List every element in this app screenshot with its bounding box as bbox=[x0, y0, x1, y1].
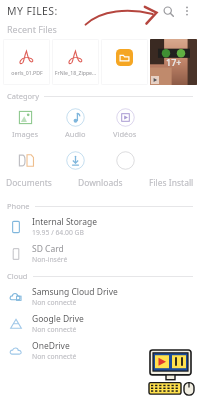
button[interactable]: oerls_01.PDF bbox=[3, 39, 50, 85]
staticText: 19.95 / 64.00 GB bbox=[32, 228, 84, 237]
button[interactable]: Search bbox=[158, 1, 178, 21]
button[interactable]: Google Drive bbox=[0, 310, 200, 337]
staticText: OneDrive bbox=[32, 340, 70, 352]
button[interactable] bbox=[100, 143, 150, 177]
button[interactable]: Audio bbox=[50, 103, 100, 143]
staticText: FrNle_18_Zipped Pdf.so bbox=[54, 69, 97, 76]
button[interactable] bbox=[0, 143, 50, 177]
staticText: Phone bbox=[7, 201, 30, 211]
staticText: Non connecté bbox=[32, 352, 77, 361]
other: Site watermark bbox=[147, 349, 197, 397]
staticText: 17+ bbox=[166, 56, 182, 68]
staticText: Audio bbox=[65, 129, 86, 139]
button[interactable]: Files Install bbox=[149, 177, 194, 189]
staticText: Vidéos bbox=[113, 129, 137, 139]
staticText: Images bbox=[12, 129, 39, 139]
button[interactable]: Samsung Cloud Drive bbox=[0, 283, 200, 310]
staticText: Non connecté bbox=[32, 325, 77, 334]
button[interactable] bbox=[50, 143, 100, 177]
button[interactable]: SD Card bbox=[0, 240, 200, 267]
staticText: Non-inséré bbox=[32, 255, 68, 264]
button[interactable]: Recent photo 17+ bbox=[150, 39, 197, 85]
staticText: Cloud bbox=[7, 271, 28, 281]
staticText: oerls_01.PDF bbox=[11, 69, 43, 76]
staticText: Samsung Cloud Drive bbox=[32, 286, 118, 298]
staticText: Recent Files bbox=[7, 23, 57, 35]
button[interactable]: Vidéos bbox=[100, 103, 150, 143]
staticText: SD Card bbox=[32, 243, 64, 255]
button[interactable]: More options bbox=[178, 2, 196, 20]
button[interactable]: Downloads bbox=[78, 177, 123, 189]
staticText: Category bbox=[7, 91, 39, 101]
button[interactable]: Images bbox=[0, 103, 50, 143]
staticText: MY FILES: bbox=[7, 4, 58, 18]
button[interactable]: Internal Storage bbox=[0, 213, 200, 240]
button[interactable]: Documents bbox=[6, 177, 52, 189]
staticText: Internal Storage bbox=[32, 216, 97, 228]
staticText: Non connecté bbox=[32, 298, 77, 307]
button[interactable]: OneDrive bbox=[0, 337, 200, 364]
button[interactable] bbox=[101, 39, 148, 85]
staticText: Google Drive bbox=[32, 313, 84, 325]
button[interactable]: FrNle_18_Zipped Pdf.so bbox=[52, 39, 99, 85]
